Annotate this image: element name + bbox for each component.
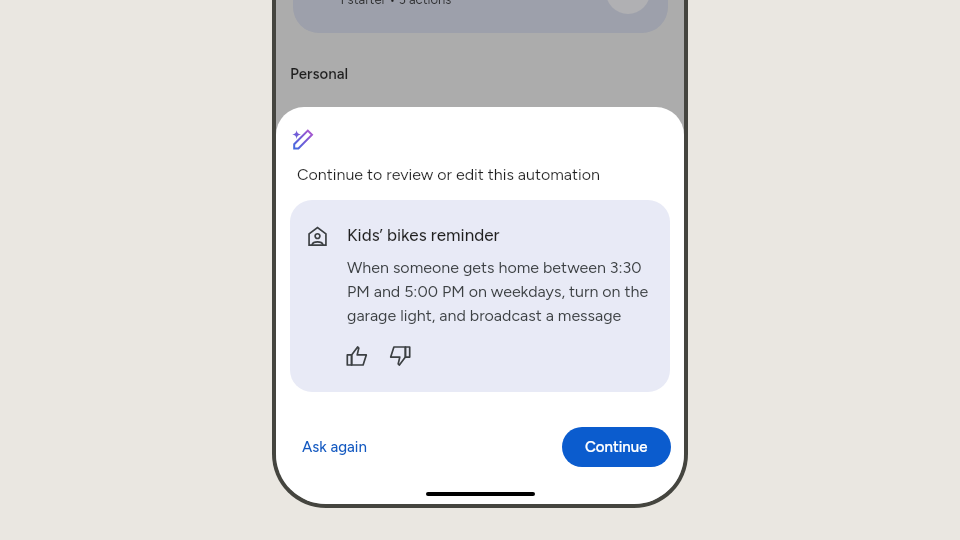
staticText: Personal [290, 65, 349, 83]
staticText: Kids’ bikes reminder [347, 225, 500, 245]
staticText: When someone gets home between 3:30 PM a… [347, 258, 659, 325]
button[interactable]: Thumbs up, good suggestion [340, 339, 374, 373]
staticText: Ask again [302, 438, 367, 456]
button[interactable]: Thumbs down, bad suggestion [383, 339, 417, 373]
staticText: Continue to review or edit this automati… [297, 165, 600, 184]
button[interactable]: Ask again [296, 431, 373, 463]
button[interactable]: Continue [562, 427, 671, 467]
staticText: Continue [585, 438, 648, 456]
staticText: 1 starter • 3 actions [339, 0, 452, 8]
